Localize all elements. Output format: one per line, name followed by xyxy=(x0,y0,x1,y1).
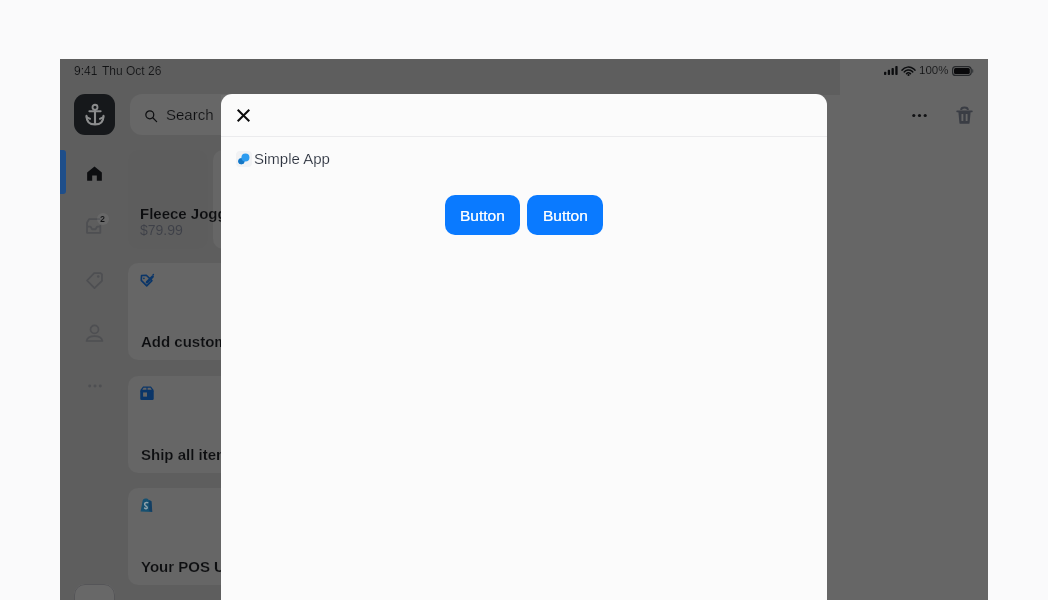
staticText: Fleece Jogger xyxy=(140,205,241,222)
button[interactable] xyxy=(213,150,288,249)
button[interactable]: Home xyxy=(74,153,115,194)
button[interactable]: Account xyxy=(74,584,115,600)
staticText: 9:41 xyxy=(74,64,98,77)
staticText: $79.99 xyxy=(140,222,183,238)
button[interactable]: Button xyxy=(527,195,603,235)
button[interactable]: Close xyxy=(225,97,262,134)
staticText: Ship all items xyxy=(141,446,238,463)
staticText: Button xyxy=(543,207,588,224)
staticText: Add custom xyxy=(141,333,228,350)
button[interactable]: Delete xyxy=(946,97,983,134)
button[interactable]: Shop home xyxy=(74,94,115,135)
button[interactable]: Add custom xyxy=(128,263,288,360)
button[interactable]: Customers xyxy=(74,313,115,354)
staticText: 100% xyxy=(919,64,949,77)
staticText: Search xyxy=(166,106,214,123)
staticText: Your POS UI xyxy=(141,558,230,575)
button[interactable]: More options xyxy=(901,97,938,134)
staticText: 2 xyxy=(100,214,106,224)
button[interactable]: Button xyxy=(445,195,520,235)
button[interactable]: Orders xyxy=(74,205,115,246)
button[interactable]: Ship all items xyxy=(128,376,288,473)
staticText: Thu Oct 26 xyxy=(102,64,162,77)
button[interactable]: Products xyxy=(74,260,115,301)
button[interactable]: Your POS UI xyxy=(128,488,288,585)
button[interactable]: Simple App xyxy=(232,145,352,171)
button[interactable] xyxy=(128,150,208,249)
staticText: Button xyxy=(460,207,505,224)
button[interactable]: Search xyxy=(130,94,330,135)
staticText: Simple App xyxy=(254,150,330,167)
